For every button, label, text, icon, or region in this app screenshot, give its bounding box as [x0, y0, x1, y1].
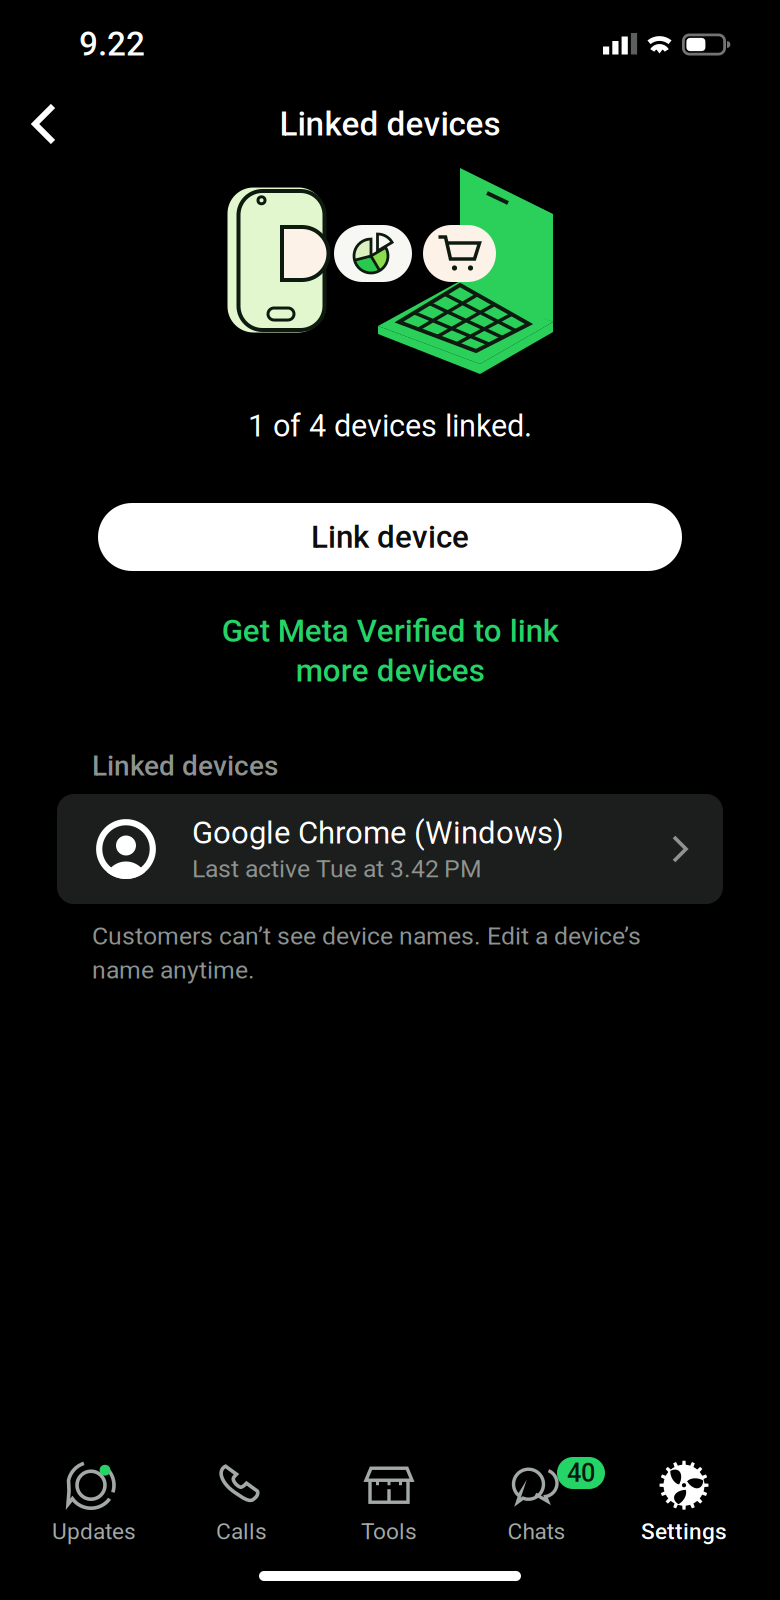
- staticText: Google Chrome (Windows): [192, 815, 564, 851]
- staticText: 1 of 4 devices linked.: [248, 408, 532, 444]
- button[interactable]: Tools: [316, 1451, 462, 1551]
- button[interactable]: Back: [22, 90, 90, 158]
- button[interactable]: Google Chrome (Windows): [57, 794, 723, 904]
- staticText: Last active Tue at 3.42 PM: [192, 854, 482, 883]
- staticText: Customers can’t see device names. Edit a…: [92, 921, 641, 984]
- staticText: Linked devices: [279, 104, 500, 144]
- button[interactable]: Settings: [611, 1451, 757, 1551]
- staticText: Link device: [311, 519, 469, 555]
- staticText: Settings: [641, 1518, 727, 1545]
- staticText: Updates: [52, 1518, 136, 1545]
- button[interactable]: Calls: [168, 1451, 314, 1551]
- staticText: 40: [567, 1458, 595, 1488]
- staticText: Calls: [216, 1518, 267, 1545]
- button[interactable]: Get Meta Verified to link more devices: [221, 613, 558, 689]
- staticText: Linked devices: [92, 750, 278, 782]
- staticText: Chats: [507, 1518, 565, 1545]
- button[interactable]: Updates: [21, 1451, 167, 1551]
- button[interactable]: Link device: [98, 503, 682, 571]
- button[interactable]: Chats: [463, 1451, 609, 1551]
- staticText: Tools: [361, 1518, 417, 1545]
- staticText: 9.22: [79, 24, 145, 64]
- staticText: Get Meta Verified to link more devices: [221, 613, 558, 689]
